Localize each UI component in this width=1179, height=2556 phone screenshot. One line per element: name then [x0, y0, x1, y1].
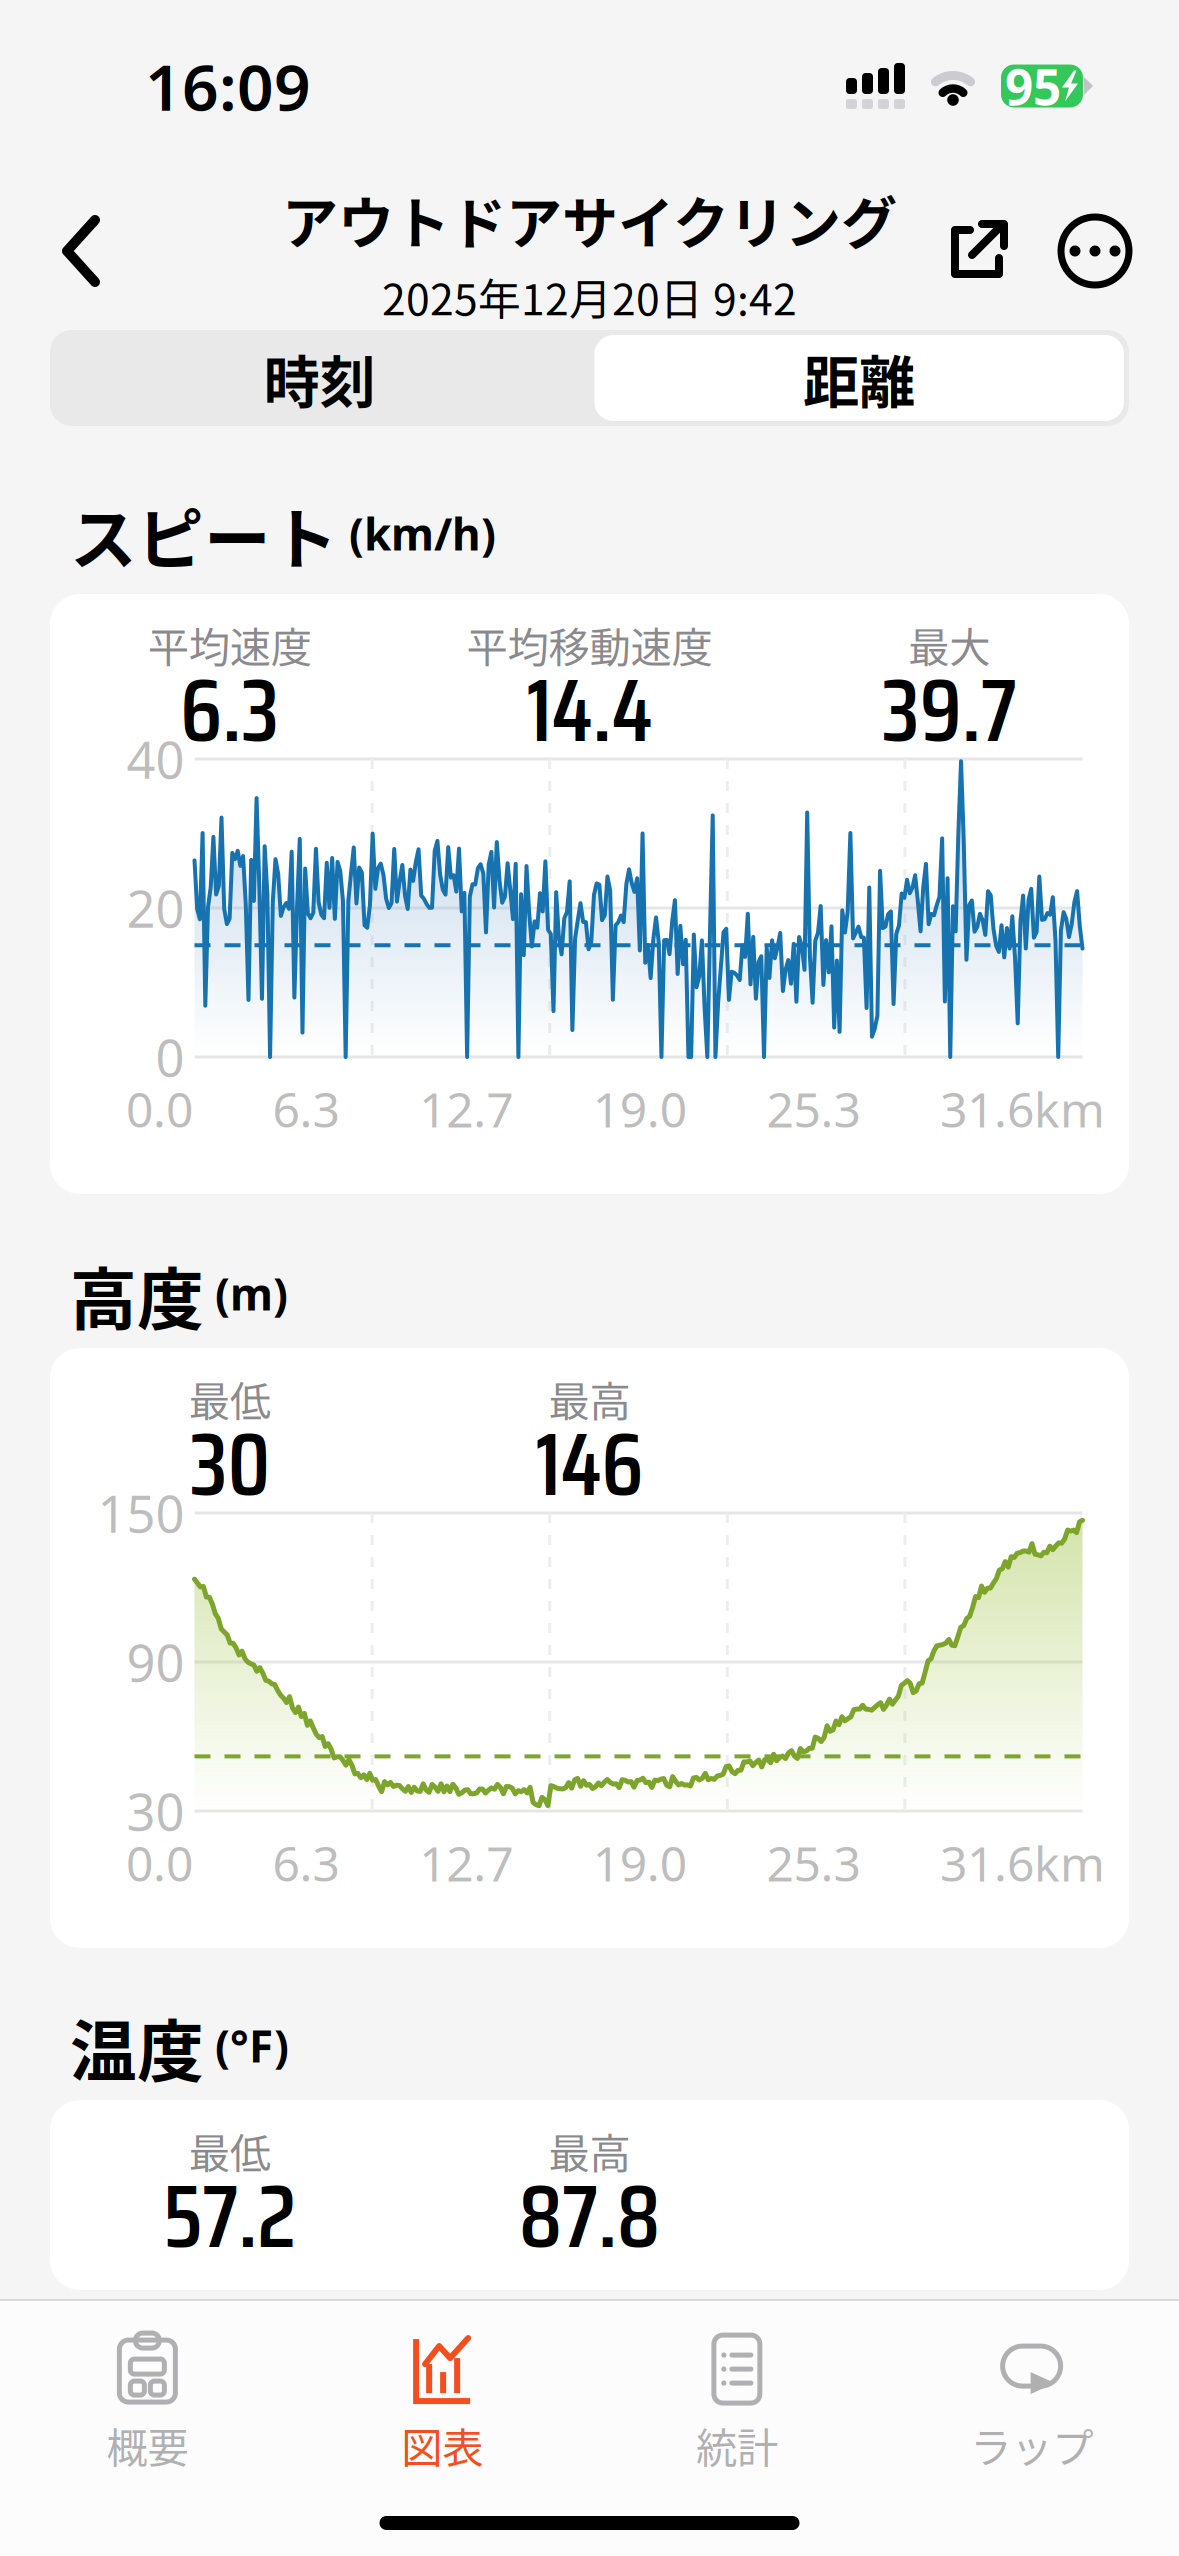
staticText: 6.3: [273, 1077, 340, 1141]
staticText: 16:09: [145, 43, 311, 128]
button[interactable]: ラップ: [884, 2338, 1179, 2468]
staticText: 14.4: [526, 641, 652, 780]
button[interactable]: Back: [0, 193, 146, 309]
staticText: 統計: [696, 2415, 778, 2475]
staticText: 最高: [548, 2121, 630, 2180]
staticText: 2025年12月20日 9:42: [382, 266, 797, 327]
button[interactable]: 距離: [589, 335, 1129, 421]
staticText: 30: [126, 1777, 184, 1845]
button[interactable]: 時刻: [50, 330, 589, 426]
staticText: 時刻: [264, 337, 376, 419]
staticText: 12.7: [419, 1831, 513, 1895]
staticText: 146: [535, 1395, 643, 1534]
staticText: 31.6km: [940, 1831, 1105, 1895]
staticText: 最低: [189, 1369, 271, 1428]
staticText: 31.6km: [940, 1077, 1105, 1141]
staticText: 距離: [803, 337, 915, 419]
staticText: 0: [155, 1023, 184, 1091]
button[interactable]: 図表: [295, 2338, 590, 2468]
staticText: 150: [97, 1479, 184, 1547]
staticText: 0.0: [126, 1077, 193, 1141]
staticText: 19.0: [593, 1831, 687, 1895]
staticText: スピート: [70, 487, 338, 583]
staticText: 平均速度: [148, 615, 312, 674]
staticText: 平均移動速度: [466, 615, 712, 674]
staticText: 図表: [401, 2415, 483, 2475]
staticText: 0.0: [126, 1831, 193, 1895]
staticText: 6.3: [180, 641, 279, 780]
staticText: 40: [126, 725, 184, 793]
staticText: ラップ: [970, 2415, 1093, 2475]
staticText: 87.8: [519, 2147, 660, 2286]
staticText: (m): [204, 1264, 288, 1323]
button[interactable]: 概要: [0, 2338, 295, 2468]
staticText: 39.7: [882, 641, 1017, 780]
staticText: 57.2: [163, 2147, 296, 2286]
staticText: 20: [126, 874, 184, 942]
button[interactable]: Share: [915, 194, 1037, 308]
staticText: 90: [126, 1628, 184, 1696]
staticText: 30: [190, 1395, 270, 1534]
staticText: 高度: [70, 1247, 204, 1343]
staticText: 概要: [106, 2415, 188, 2475]
staticText: 最大: [908, 615, 990, 674]
button[interactable]: More: [1037, 195, 1153, 307]
staticText: 温度: [70, 1999, 204, 2095]
staticText: 6.3: [273, 1831, 340, 1895]
button[interactable]: 統計: [589, 2338, 884, 2468]
staticText: (°F): [204, 2016, 289, 2075]
staticText: 12.7: [419, 1077, 513, 1141]
staticText: 最低: [189, 2121, 271, 2180]
staticText: 最高: [548, 1369, 630, 1428]
staticText: 25.3: [766, 1077, 860, 1141]
staticText: 25.3: [766, 1831, 860, 1895]
staticText: 19.0: [593, 1077, 687, 1141]
staticText: (km/h): [338, 504, 496, 563]
staticText: アウトドアサイクリング: [282, 179, 897, 260]
staticText: 95: [1005, 53, 1061, 119]
